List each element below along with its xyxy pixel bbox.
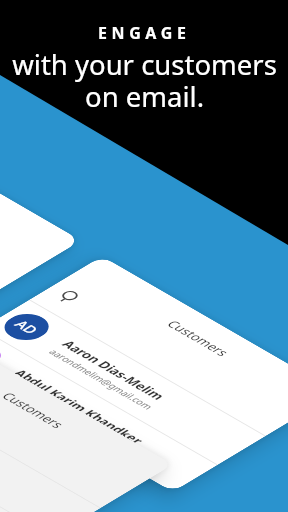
staticText: AD <box>10 317 44 338</box>
staticText: Aaron Dias-Melim <box>58 334 170 405</box>
staticText: Customers <box>0 387 70 433</box>
button[interactable]: AD <box>0 292 266 473</box>
button[interactable]: AT <box>0 364 101 512</box>
button[interactable]: AK <box>0 321 218 500</box>
staticText: alainabtyrer@gmail.com <box>0 373 104 440</box>
staticText: ENGAGE <box>98 22 191 44</box>
button[interactable]: AH <box>0 393 53 512</box>
staticText: aarondmelim@gmail.com <box>46 344 158 415</box>
staticText: with your customers on email. <box>12 46 277 115</box>
staticText: Abdul Karim Khandker <box>10 362 149 451</box>
staticText: Customers <box>163 315 235 361</box>
